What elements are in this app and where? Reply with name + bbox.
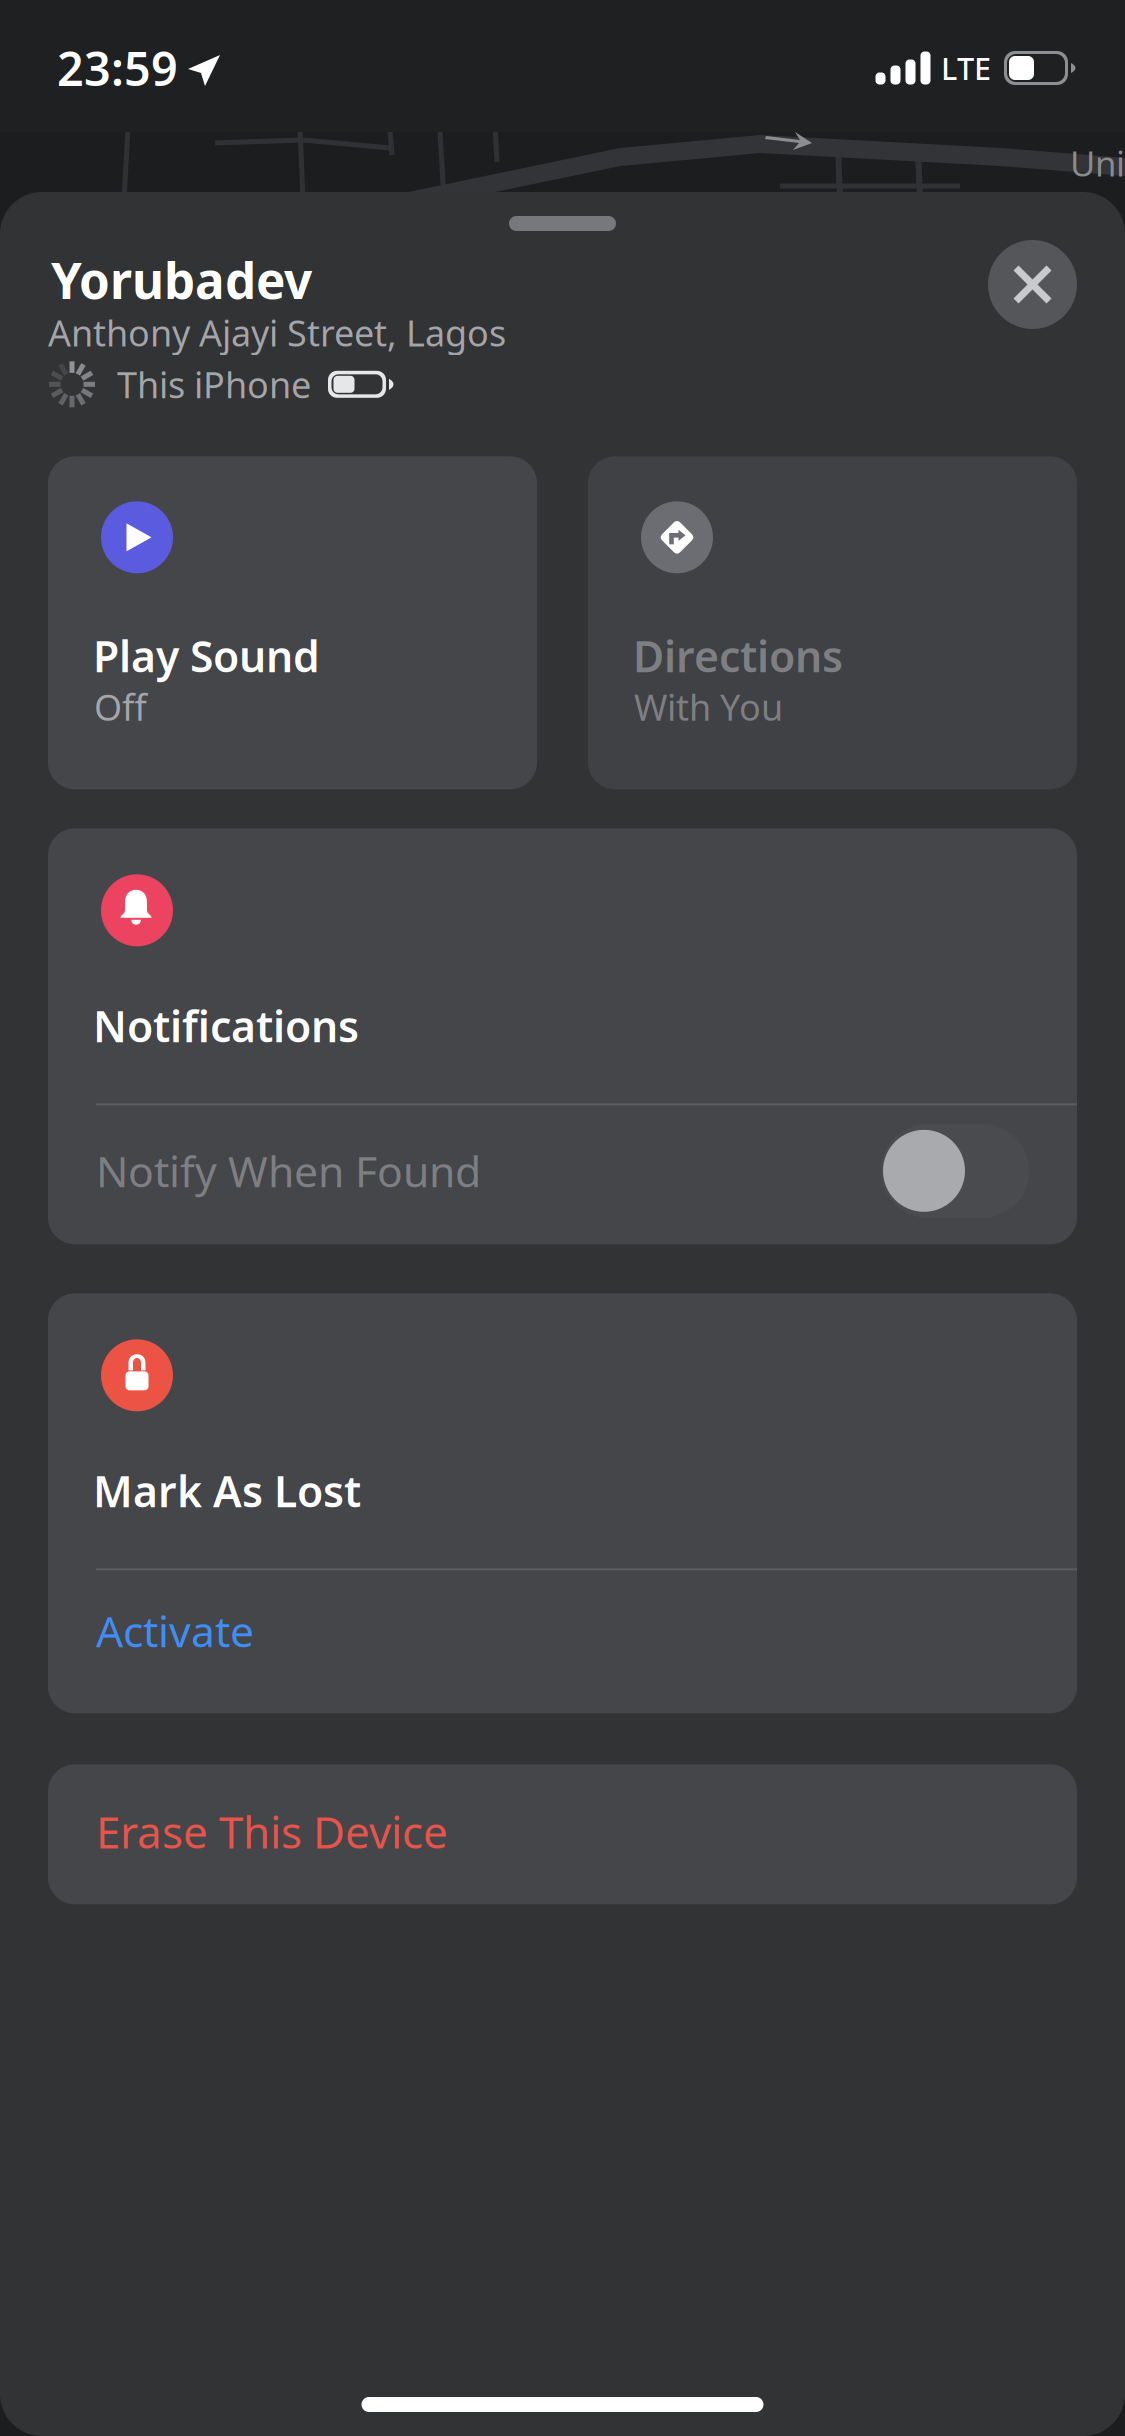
staticText: Erase This Device <box>96 1802 448 1860</box>
staticText: Mark As Lost <box>93 1462 361 1519</box>
staticText: Notifications <box>93 997 359 1054</box>
staticText: Notify When Found <box>96 1142 481 1199</box>
staticText: Univ <box>1070 140 1125 186</box>
staticText: LTE <box>941 48 991 88</box>
button[interactable]: Notify When Found <box>48 1097 1077 1244</box>
button[interactable]: Close <box>988 240 1077 329</box>
staticText: 23:59 <box>57 37 178 99</box>
staticText: This iPhone <box>117 360 311 408</box>
staticText: Activate <box>96 1602 254 1659</box>
button[interactable]: Activate <box>48 1548 1077 1713</box>
staticText: With You <box>634 683 783 731</box>
staticText: Yorubadev <box>51 247 312 312</box>
button[interactable]: Directions <box>588 456 1077 789</box>
staticText: Off <box>94 683 147 731</box>
button[interactable]: Erase This Device <box>48 1764 1077 1904</box>
staticText: Anthony Ajayi Street, Lagos <box>48 308 506 356</box>
button[interactable]: Play Sound <box>48 456 537 789</box>
staticText: Play Sound <box>93 627 320 684</box>
staticText: Directions <box>633 627 843 684</box>
